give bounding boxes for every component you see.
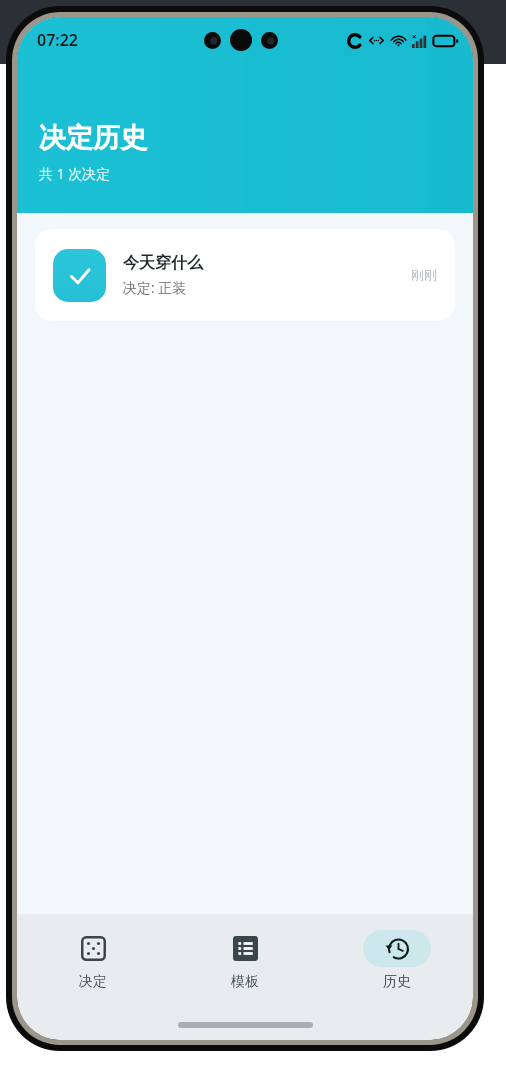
staticText: 决定历史 xyxy=(39,121,147,155)
button[interactable]: 今天穿什么 xyxy=(35,229,455,321)
other: 模板 xyxy=(233,936,258,961)
button[interactable]: 历史 xyxy=(321,930,473,991)
staticText: 决定: 正装 xyxy=(123,278,187,297)
button[interactable]: 决定 xyxy=(17,930,169,991)
staticText: 模板 xyxy=(231,973,259,991)
staticText: 刚刚 xyxy=(411,267,437,283)
staticText: 07:22 xyxy=(37,29,79,51)
other: 决定 xyxy=(81,936,106,961)
staticText: 共 1 次决定 xyxy=(39,164,111,183)
button[interactable]: 模板 xyxy=(169,930,321,991)
other: 历史 xyxy=(385,936,410,961)
staticText: 决定 xyxy=(79,973,107,991)
staticText: 历史 xyxy=(383,973,411,991)
staticText: 今天穿什么 xyxy=(123,253,203,273)
